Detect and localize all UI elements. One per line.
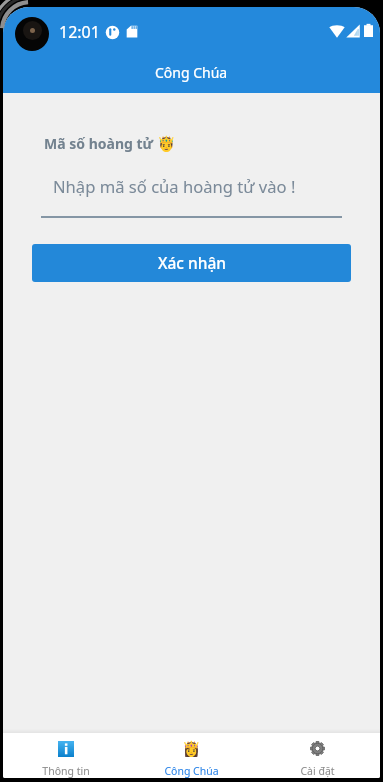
staticText: Nhập mã số của hoàng tử vào ! [53, 175, 296, 198]
staticText: Xác nhận [158, 252, 226, 273]
staticText: 12:01 [59, 21, 100, 43]
button[interactable]: Nhập mã số của hoàng tử vào ! [41, 175, 342, 218]
button[interactable]: Thông tin [3, 733, 128, 778]
staticText: Công Chúa [155, 63, 228, 82]
button[interactable]: 👸 [128, 733, 254, 778]
staticText: 🤴 [157, 135, 176, 153]
button[interactable]: Xác nhận [32, 244, 351, 282]
staticText: Cài đặt [300, 764, 335, 778]
staticText: Thông tin [42, 764, 90, 778]
staticText: Công Chúa [164, 764, 219, 778]
staticText: Mã số hoàng tử [44, 134, 157, 153]
button[interactable]: Cài đặt [254, 733, 380, 778]
staticText: 👸 [182, 740, 201, 757]
